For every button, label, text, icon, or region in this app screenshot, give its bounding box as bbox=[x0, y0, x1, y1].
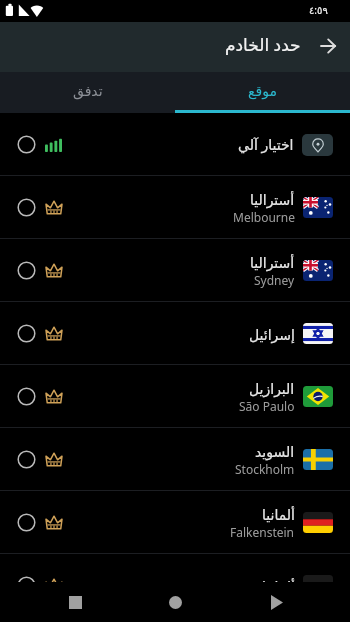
staticText: ٤:٥٩ bbox=[309, 3, 328, 17]
button[interactable]: البرازيل bbox=[0, 365, 350, 428]
staticText: Sydney bbox=[254, 272, 295, 288]
button[interactable]: أستراليا bbox=[0, 176, 350, 239]
button[interactable]: موقع bbox=[175, 72, 350, 110]
button[interactable]: ألمانيا bbox=[0, 491, 350, 554]
button[interactable]: Recent apps bbox=[54, 582, 96, 622]
staticText: أستراليا bbox=[250, 255, 295, 271]
staticText: ألمانيا bbox=[262, 579, 295, 595]
button[interactable]: السويد bbox=[0, 428, 350, 491]
staticText: São Paulo bbox=[239, 398, 295, 414]
staticText: حدد الخادم bbox=[225, 33, 301, 56]
staticText: السويد bbox=[255, 444, 295, 460]
button[interactable]: Back bbox=[256, 582, 298, 622]
button[interactable]: أستراليا bbox=[0, 239, 350, 302]
button[interactable]: ألمانيا bbox=[0, 554, 350, 617]
staticText: تدفق bbox=[73, 83, 103, 99]
button[interactable]: تدفق bbox=[0, 72, 175, 110]
staticText: أستراليا bbox=[250, 192, 295, 208]
button[interactable]: اختيار آلي bbox=[0, 113, 350, 176]
staticText: ألمانيا bbox=[262, 507, 295, 523]
staticText: البرازيل bbox=[249, 381, 295, 397]
button[interactable]: Home bbox=[154, 582, 196, 622]
staticText: إسرائيل bbox=[249, 327, 295, 343]
staticText: Melbourne bbox=[233, 209, 295, 225]
staticText: موقع bbox=[248, 83, 277, 99]
staticText: اختيار آلي bbox=[238, 135, 294, 154]
button[interactable]: إسرائيل bbox=[0, 302, 350, 365]
staticText: Falkenstein bbox=[230, 524, 295, 540]
staticText: Stockholm bbox=[235, 461, 295, 477]
button[interactable]: Back bbox=[317, 35, 339, 57]
